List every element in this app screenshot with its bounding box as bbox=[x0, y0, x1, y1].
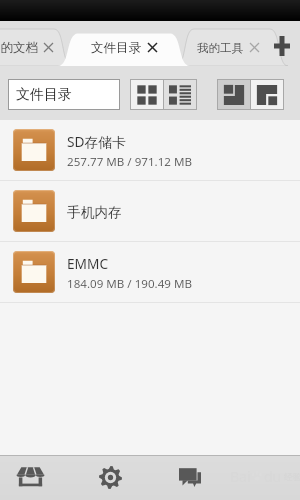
button[interactable]: 文件目录 bbox=[91, 30, 163, 65]
button[interactable]: New tab bbox=[269, 33, 295, 59]
staticText: 184.09 MB / 190.49 MB bbox=[67, 276, 193, 292]
staticText: EMMC bbox=[67, 254, 109, 273]
button[interactable]: 手机内存 bbox=[0, 181, 300, 241]
button[interactable]: EMMC bbox=[0, 242, 300, 302]
staticText: SD存储卡 bbox=[67, 132, 126, 151]
button[interactable]: Market bbox=[0, 456, 70, 500]
staticText: 文件目录 bbox=[91, 40, 141, 56]
button[interactable]: 我的文档 bbox=[0, 30, 58, 65]
staticText: 我的文档 bbox=[0, 40, 38, 56]
button[interactable]: Settings bbox=[73, 456, 148, 500]
button[interactable]: SD存储卡 bbox=[0, 120, 300, 180]
button[interactable]: Layout large bbox=[218, 80, 250, 109]
button[interactable]: Grid view bbox=[131, 80, 163, 109]
button[interactable]: List view bbox=[164, 80, 196, 109]
button[interactable]: Messages bbox=[153, 456, 227, 500]
button[interactable]: Layout small bbox=[251, 80, 283, 109]
button[interactable]: 我的工具 bbox=[197, 30, 266, 65]
staticText: 我的工具 bbox=[197, 41, 243, 55]
button[interactable]: 文件目录 bbox=[8, 79, 120, 110]
staticText: 257.77 MB / 971.12 MB bbox=[67, 154, 193, 170]
staticText: 文件目录 bbox=[16, 86, 72, 104]
staticText: 手机内存 bbox=[67, 204, 122, 221]
